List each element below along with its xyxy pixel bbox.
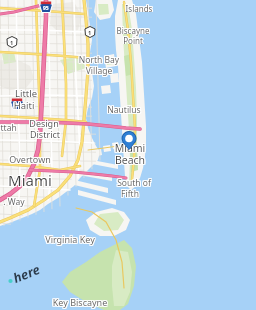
button[interactable]: Miami Beach location marker bbox=[0, 0, 22, 22]
button[interactable]: Map of Miami bbox=[0, 0, 256, 310]
